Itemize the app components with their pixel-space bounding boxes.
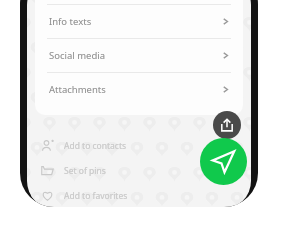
button[interactable]: Attachments: [35, 73, 243, 106]
staticText: Add to favorites: [64, 190, 128, 202]
staticText: Set of pins: [64, 165, 106, 177]
button[interactable]: Send: [200, 138, 247, 185]
button[interactable]: Add to favorites: [27, 183, 251, 207]
button[interactable]: Share: [213, 111, 241, 139]
staticText: Info texts: [49, 15, 92, 28]
staticText: Social media: [49, 49, 106, 62]
button[interactable]: Info texts: [35, 5, 243, 38]
button[interactable]: Add to contacts: [27, 133, 251, 158]
button[interactable]: Set of pins: [27, 158, 251, 183]
button[interactable]: Social media: [35, 39, 243, 72]
staticText: Add to contacts: [64, 140, 127, 152]
staticText: Attachments: [49, 83, 106, 96]
